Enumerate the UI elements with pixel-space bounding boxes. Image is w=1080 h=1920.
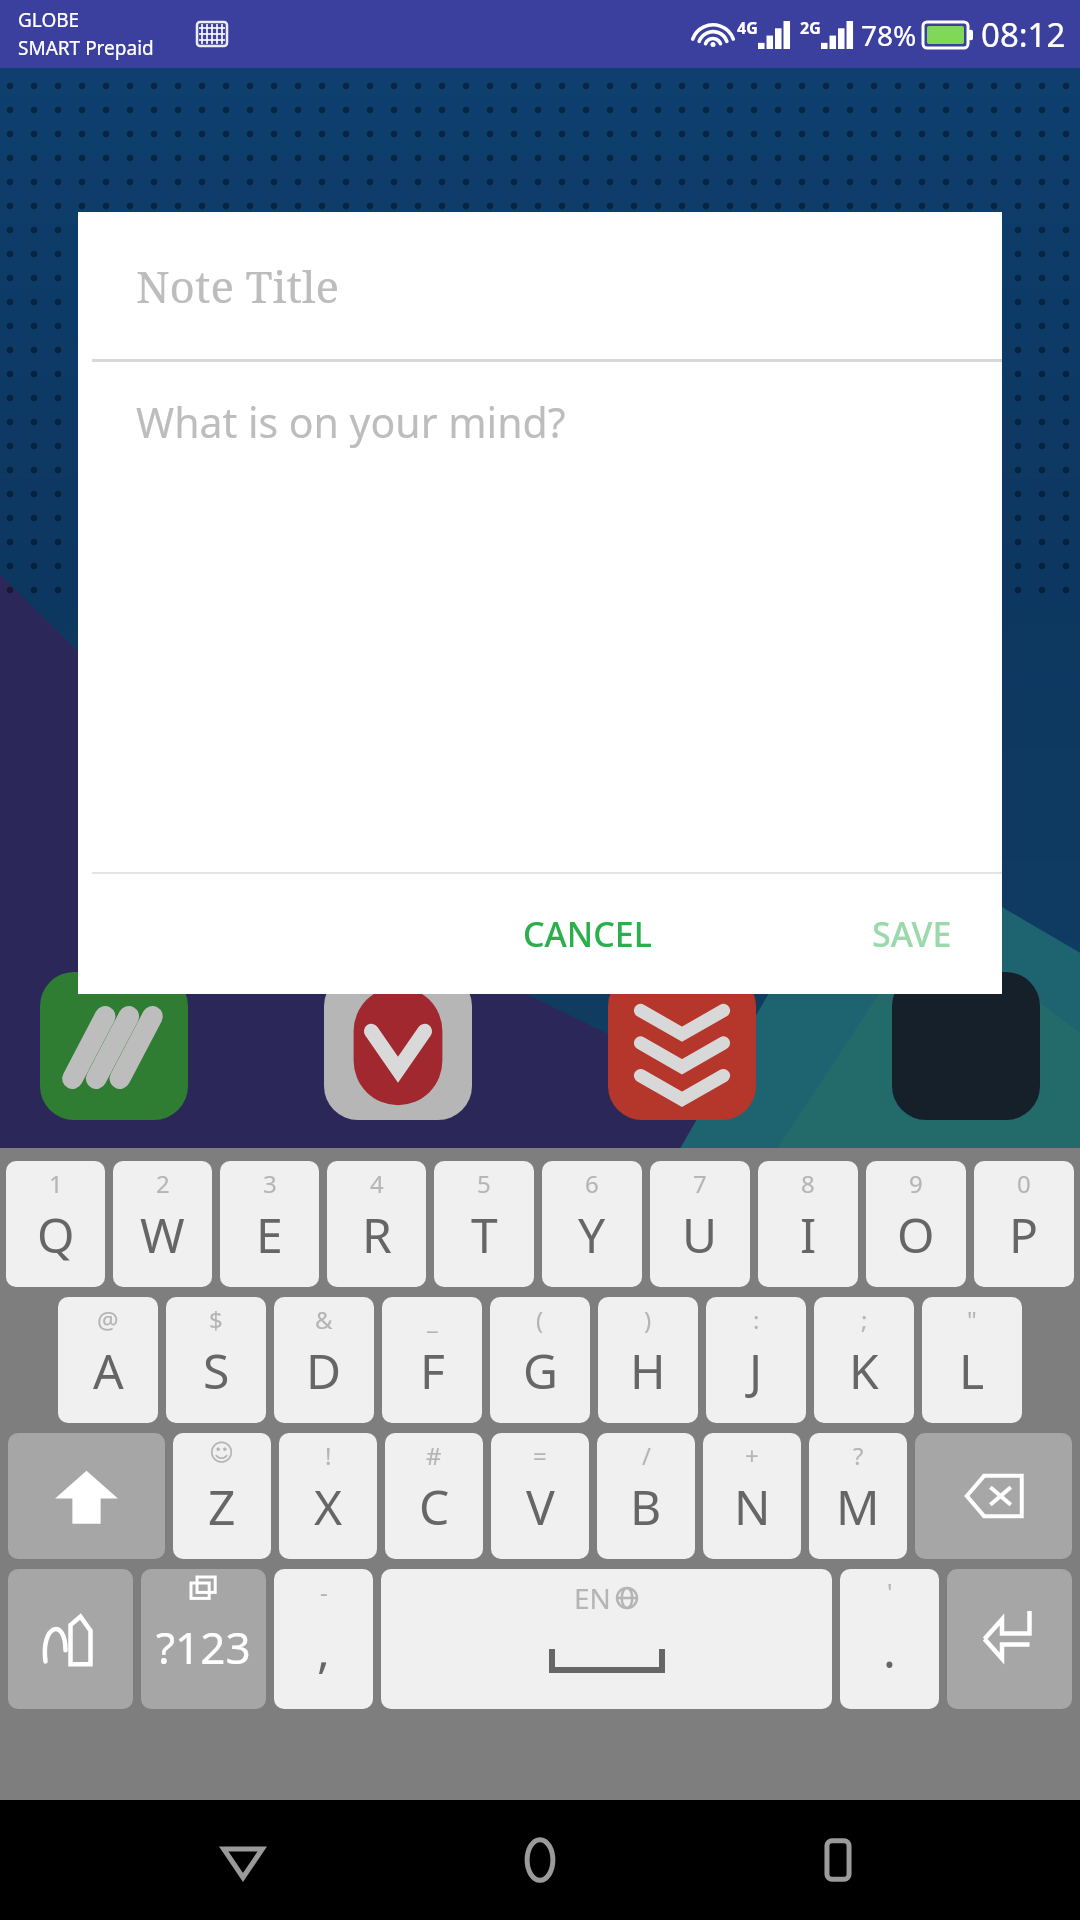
button[interactable]: 4 bbox=[327, 1161, 426, 1287]
staticText: $ bbox=[209, 1303, 223, 1336]
button[interactable]: 5 bbox=[434, 1161, 534, 1287]
button[interactable]: Back bbox=[188, 1805, 298, 1915]
staticText: X bbox=[314, 1474, 343, 1539]
staticText: E bbox=[256, 1202, 283, 1267]
button[interactable]: Backspace bbox=[915, 1433, 1072, 1559]
button[interactable]: Shift bbox=[8, 1433, 165, 1559]
staticText: ' bbox=[887, 1575, 893, 1608]
staticText: L bbox=[959, 1338, 985, 1403]
staticText: ! bbox=[325, 1439, 332, 1472]
staticText: SAVE bbox=[872, 911, 952, 957]
staticText: 8 bbox=[801, 1167, 815, 1200]
button[interactable]: 0 bbox=[974, 1161, 1074, 1287]
staticText: @ bbox=[97, 1303, 119, 1336]
button[interactable]: ?123 bbox=[141, 1569, 266, 1709]
staticText: # bbox=[426, 1439, 442, 1472]
staticText: GLOBE bbox=[18, 7, 80, 33]
staticText: K bbox=[849, 1338, 879, 1403]
staticText: R bbox=[362, 1202, 392, 1267]
button[interactable]: = bbox=[491, 1433, 589, 1559]
staticText: W bbox=[140, 1202, 185, 1267]
staticText: SMART Prepaid bbox=[18, 35, 154, 61]
staticText: N bbox=[734, 1474, 771, 1539]
staticText: Y bbox=[578, 1202, 606, 1267]
button[interactable]: 7 bbox=[650, 1161, 750, 1287]
staticText: ) bbox=[644, 1303, 652, 1336]
button[interactable]: 2 bbox=[113, 1161, 212, 1287]
button[interactable]: ( bbox=[490, 1297, 590, 1423]
button[interactable]: ! bbox=[279, 1433, 377, 1559]
staticText: CANCEL bbox=[523, 911, 652, 957]
staticText: A bbox=[93, 1338, 124, 1403]
staticText: - bbox=[320, 1575, 328, 1608]
staticText: , bbox=[317, 1617, 330, 1682]
staticText: Z bbox=[208, 1474, 236, 1539]
staticText: : bbox=[753, 1303, 760, 1336]
staticText: B bbox=[630, 1474, 662, 1539]
staticText: V bbox=[526, 1474, 555, 1539]
button[interactable]: - bbox=[274, 1569, 373, 1709]
button[interactable]: CANCEL bbox=[493, 889, 682, 979]
button[interactable]: 3 bbox=[220, 1161, 319, 1287]
staticText: G bbox=[523, 1338, 558, 1403]
button[interactable]: Space bbox=[381, 1569, 832, 1709]
staticText: ?123 bbox=[156, 1617, 251, 1677]
staticText: ( bbox=[536, 1303, 544, 1336]
staticText: What is on your mind? bbox=[136, 394, 566, 450]
staticText: T bbox=[471, 1202, 498, 1267]
button[interactable]: _ bbox=[382, 1297, 482, 1423]
staticText: _ bbox=[427, 1303, 438, 1336]
staticText: 4 bbox=[370, 1167, 384, 1200]
staticText: Q bbox=[37, 1202, 75, 1267]
staticText: P bbox=[1009, 1202, 1039, 1267]
button[interactable]: @ bbox=[58, 1297, 158, 1423]
staticText: 0 bbox=[1017, 1167, 1031, 1200]
staticText: J bbox=[749, 1338, 763, 1403]
staticText: / bbox=[642, 1439, 651, 1472]
button[interactable]: " bbox=[922, 1297, 1022, 1423]
button[interactable]: + bbox=[703, 1433, 801, 1559]
staticText: & bbox=[315, 1303, 333, 1336]
button[interactable]: $ bbox=[166, 1297, 266, 1423]
button[interactable]: ) bbox=[598, 1297, 698, 1423]
button[interactable]: ' bbox=[840, 1569, 939, 1709]
staticText: ☺ bbox=[209, 1439, 235, 1467]
staticText: ? bbox=[853, 1439, 864, 1472]
staticText: 6 bbox=[585, 1167, 599, 1200]
staticText: 9 bbox=[909, 1167, 923, 1200]
button[interactable]: Recent apps bbox=[783, 1805, 893, 1915]
button[interactable]: ☺ bbox=[173, 1433, 271, 1559]
button[interactable]: 9 bbox=[866, 1161, 966, 1287]
button[interactable]: 1 bbox=[6, 1161, 105, 1287]
button[interactable]: App bbox=[324, 972, 472, 1120]
button[interactable]: App bbox=[40, 972, 188, 1120]
button[interactable]: ; bbox=[814, 1297, 914, 1423]
button[interactable]: App bbox=[892, 972, 1040, 1120]
button[interactable]: : bbox=[706, 1297, 806, 1423]
button[interactable]: ? bbox=[809, 1433, 907, 1559]
staticText: 7 bbox=[693, 1167, 707, 1200]
staticText: S bbox=[203, 1338, 230, 1403]
staticText: F bbox=[420, 1338, 445, 1403]
button[interactable]: # bbox=[385, 1433, 483, 1559]
staticText: 4G bbox=[737, 17, 758, 39]
staticText: ; bbox=[861, 1303, 868, 1336]
staticText: D bbox=[306, 1338, 342, 1403]
button[interactable]: 6 bbox=[542, 1161, 642, 1287]
staticText: = bbox=[533, 1439, 547, 1472]
button[interactable]: / bbox=[597, 1433, 695, 1559]
staticText: U bbox=[682, 1202, 718, 1267]
button[interactable]: Enter bbox=[947, 1569, 1072, 1709]
staticText: + bbox=[745, 1439, 759, 1472]
button[interactable]: & bbox=[274, 1297, 374, 1423]
button[interactable]: App bbox=[608, 972, 756, 1120]
staticText: 08:12 bbox=[981, 12, 1066, 57]
staticText: I bbox=[800, 1202, 817, 1267]
staticText: C bbox=[419, 1474, 450, 1539]
staticText: 2 bbox=[156, 1167, 170, 1200]
staticText: " bbox=[967, 1303, 977, 1336]
button[interactable]: Handwriting bbox=[8, 1569, 133, 1709]
button[interactable]: 8 bbox=[758, 1161, 858, 1287]
button[interactable]: SAVE bbox=[842, 889, 982, 979]
button[interactable]: Home bbox=[485, 1805, 595, 1915]
